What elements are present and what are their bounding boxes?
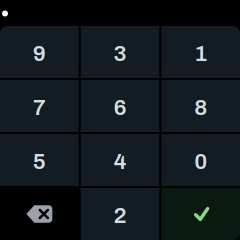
staticText: 9 [33,41,46,66]
button[interactable]: Delete [0,188,79,240]
staticText: 7 [33,95,46,120]
button[interactable]: 7 [0,80,79,132]
button[interactable]: 2 [81,188,159,240]
button[interactable]: 1 [161,26,240,78]
button[interactable]: 4 [81,134,159,186]
staticText: 4 [113,149,126,174]
staticText: 8 [194,95,207,120]
button[interactable]: 6 [81,80,159,132]
staticText: 0 [194,149,207,174]
button[interactable]: 9 [0,26,79,78]
button[interactable]: 5 [0,134,79,186]
button[interactable]: Confirm [161,188,240,240]
button[interactable]: 8 [161,80,240,132]
staticText: 1 [194,41,207,66]
staticText: 5 [33,149,46,174]
staticText: 3 [113,41,126,66]
staticText: 6 [113,95,126,120]
button[interactable]: 3 [81,26,159,78]
button[interactable]: 0 [161,134,240,186]
staticText: 2 [113,203,126,228]
